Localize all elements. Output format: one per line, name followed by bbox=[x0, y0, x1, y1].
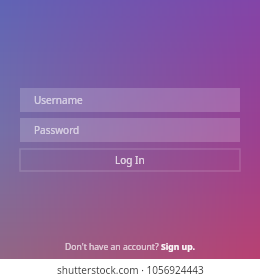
staticText: Sign up. bbox=[161, 241, 195, 253]
button[interactable]: Username bbox=[20, 88, 240, 112]
button[interactable]: Password bbox=[20, 118, 240, 142]
button[interactable]: Log In bbox=[20, 149, 240, 171]
staticText: Log In bbox=[115, 153, 145, 167]
staticText: Password bbox=[34, 123, 80, 137]
staticText: shutterstock.com · 1056924443 bbox=[57, 263, 204, 277]
staticText: Username bbox=[34, 93, 83, 107]
button[interactable]: Sign up. bbox=[161, 241, 195, 253]
staticText: Don't have an account? bbox=[65, 241, 161, 253]
